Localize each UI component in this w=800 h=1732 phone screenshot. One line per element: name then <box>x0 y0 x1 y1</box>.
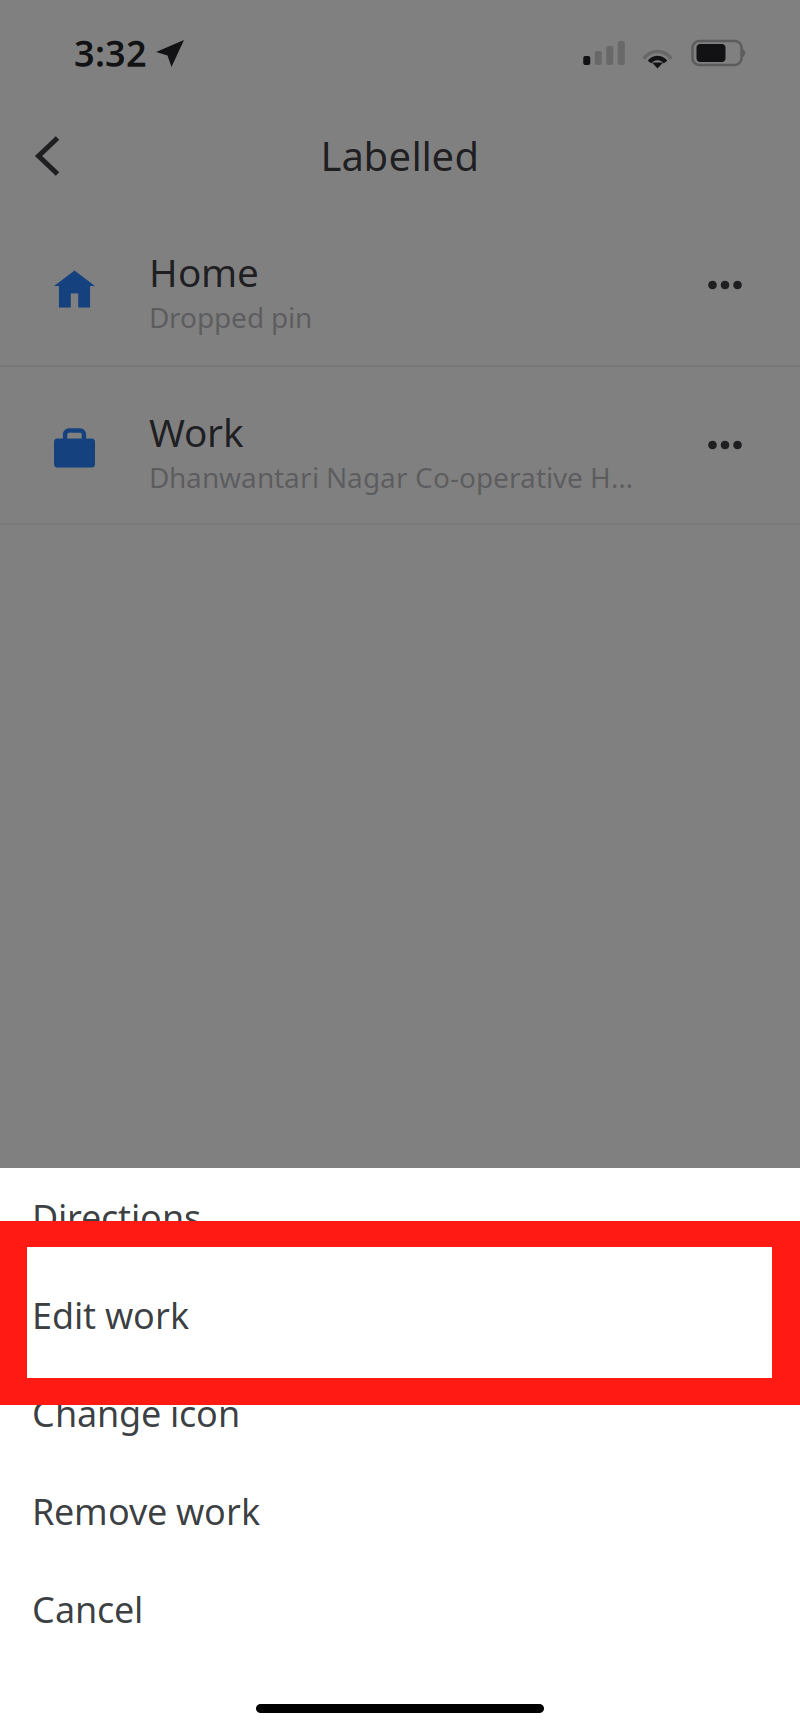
staticText: Dhanwantari Nagar Co-operative Housin… <box>149 459 644 496</box>
button[interactable]: Change icon <box>0 1364 800 1462</box>
button[interactable]: Remove work <box>0 1462 800 1560</box>
staticText: 3:32 <box>74 29 147 77</box>
button[interactable]: Directions <box>0 1168 800 1266</box>
staticText: Change icon <box>32 1389 240 1437</box>
button[interactable]: Edit work <box>0 1266 800 1364</box>
button[interactable]: Back <box>14 122 82 190</box>
staticText: Cancel <box>32 1585 143 1633</box>
button[interactable]: Home <box>0 205 800 365</box>
staticText: Edit work <box>32 1291 189 1339</box>
staticText: Labelled <box>320 129 479 182</box>
staticText: Remove work <box>32 1487 260 1535</box>
staticText: Work <box>149 406 244 457</box>
button[interactable]: Work <box>0 367 800 523</box>
button[interactable]: Cancel <box>0 1560 800 1658</box>
staticText: Dropped pin <box>149 299 312 336</box>
staticText: Home <box>149 246 259 297</box>
staticText: Directions <box>32 1193 201 1241</box>
